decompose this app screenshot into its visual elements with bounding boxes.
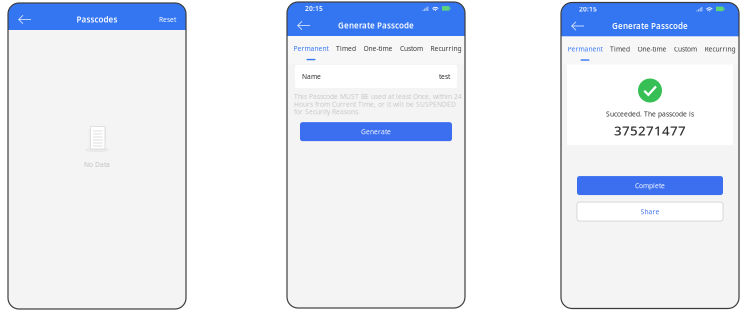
button[interactable]: One-time bbox=[360, 36, 395, 64]
staticText: Custom bbox=[400, 44, 423, 53]
button[interactable]: Permanent bbox=[290, 36, 331, 64]
staticText: Recurring bbox=[704, 44, 735, 53]
button[interactable]: Custom bbox=[397, 36, 426, 64]
button[interactable]: Share bbox=[577, 202, 723, 221]
staticText: Share bbox=[640, 207, 659, 216]
staticText: Recurring bbox=[430, 44, 461, 53]
staticText: Name bbox=[302, 72, 321, 81]
staticText: Timed bbox=[610, 44, 630, 53]
button[interactable]: Custom bbox=[671, 36, 700, 64]
button[interactable]: Reset bbox=[152, 10, 183, 29]
staticText: 20:15 bbox=[305, 4, 323, 13]
staticText: One-time bbox=[637, 44, 666, 53]
staticText: Custom bbox=[674, 44, 697, 53]
staticText: Generate Passcode bbox=[612, 21, 688, 31]
staticText: Timed bbox=[336, 44, 356, 53]
staticText: One-time bbox=[363, 44, 392, 53]
button[interactable]: Recurring bbox=[701, 36, 738, 64]
staticText: 20:15 bbox=[579, 5, 597, 13]
staticText: Generate Passcode bbox=[338, 20, 414, 31]
staticText: Succeeded. The passcode is bbox=[606, 109, 694, 118]
button[interactable]: Timed bbox=[333, 36, 359, 64]
button[interactable]: Complete bbox=[577, 176, 723, 195]
staticText: 375271477 bbox=[614, 121, 686, 139]
staticText: Complete bbox=[635, 181, 665, 190]
staticText: This Passcode MUST BE used at least Once… bbox=[294, 92, 462, 116]
button[interactable]: Back bbox=[11, 10, 38, 29]
staticText: No Data bbox=[84, 160, 110, 169]
staticText: Passcodes bbox=[76, 14, 117, 25]
button[interactable]: Back bbox=[290, 16, 317, 35]
staticText: Generate bbox=[361, 127, 391, 136]
button[interactable]: Recurring bbox=[427, 36, 464, 64]
button[interactable]: One-time bbox=[634, 36, 669, 64]
staticText: Permanent bbox=[293, 44, 328, 53]
button[interactable]: Back bbox=[564, 16, 591, 35]
button[interactable]: Permanent bbox=[564, 36, 605, 64]
button[interactable]: Generate bbox=[300, 122, 452, 141]
staticText: Reset bbox=[159, 15, 176, 24]
button[interactable]: Timed bbox=[607, 36, 633, 64]
staticText: test bbox=[439, 72, 450, 81]
staticText: Permanent bbox=[567, 44, 602, 53]
